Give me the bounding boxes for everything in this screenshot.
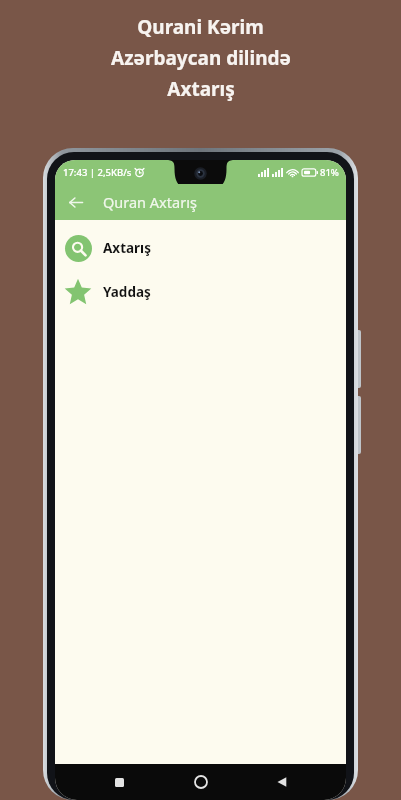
staticText: Azərbaycan dilində (111, 45, 291, 71)
button[interactable]: Home (184, 765, 218, 799)
staticText: Axtarış (103, 239, 151, 257)
button[interactable]: Recents (102, 765, 136, 799)
button[interactable]: Back (265, 765, 299, 799)
button[interactable]: Yaddaş (55, 270, 346, 314)
staticText: Quran Axtarış (103, 192, 197, 212)
button[interactable]: Back (60, 187, 90, 217)
button[interactable]: Axtarış (55, 226, 346, 270)
staticText: Axtarış (167, 76, 235, 102)
staticText: Yaddaş (103, 283, 151, 301)
staticText: 81% (320, 166, 339, 179)
staticText: Qurani Kərim (137, 14, 264, 40)
staticText: 17:43 | 2,5KB/s (63, 166, 132, 179)
